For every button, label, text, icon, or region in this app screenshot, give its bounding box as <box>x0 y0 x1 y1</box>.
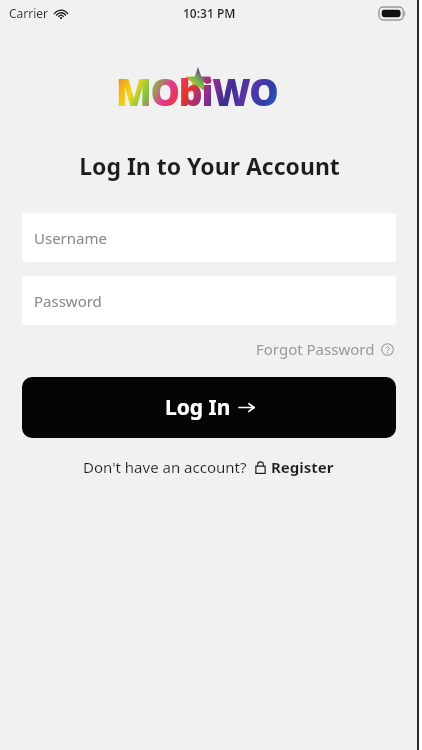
staticText: Don't have an account? <box>83 457 247 477</box>
staticText: MObiWOOD <box>116 66 302 124</box>
staticText: Forgot Password <box>256 339 375 359</box>
button[interactable]: Forgot Password <box>254 336 396 362</box>
staticText: Register <box>271 457 334 477</box>
staticText: 10:31 PM <box>183 5 236 21</box>
staticText: Log In <box>165 393 231 422</box>
button[interactable]: Username <box>22 213 396 262</box>
staticText: Carrier <box>9 5 49 21</box>
staticText: Username <box>34 228 107 248</box>
staticText: Log In to Your Account <box>79 150 340 181</box>
button[interactable]: Log In <box>22 377 396 438</box>
staticText: Password <box>34 291 102 311</box>
button[interactable]: Password <box>22 276 396 325</box>
other: Help <box>381 343 394 356</box>
button[interactable]: Register <box>254 455 335 479</box>
